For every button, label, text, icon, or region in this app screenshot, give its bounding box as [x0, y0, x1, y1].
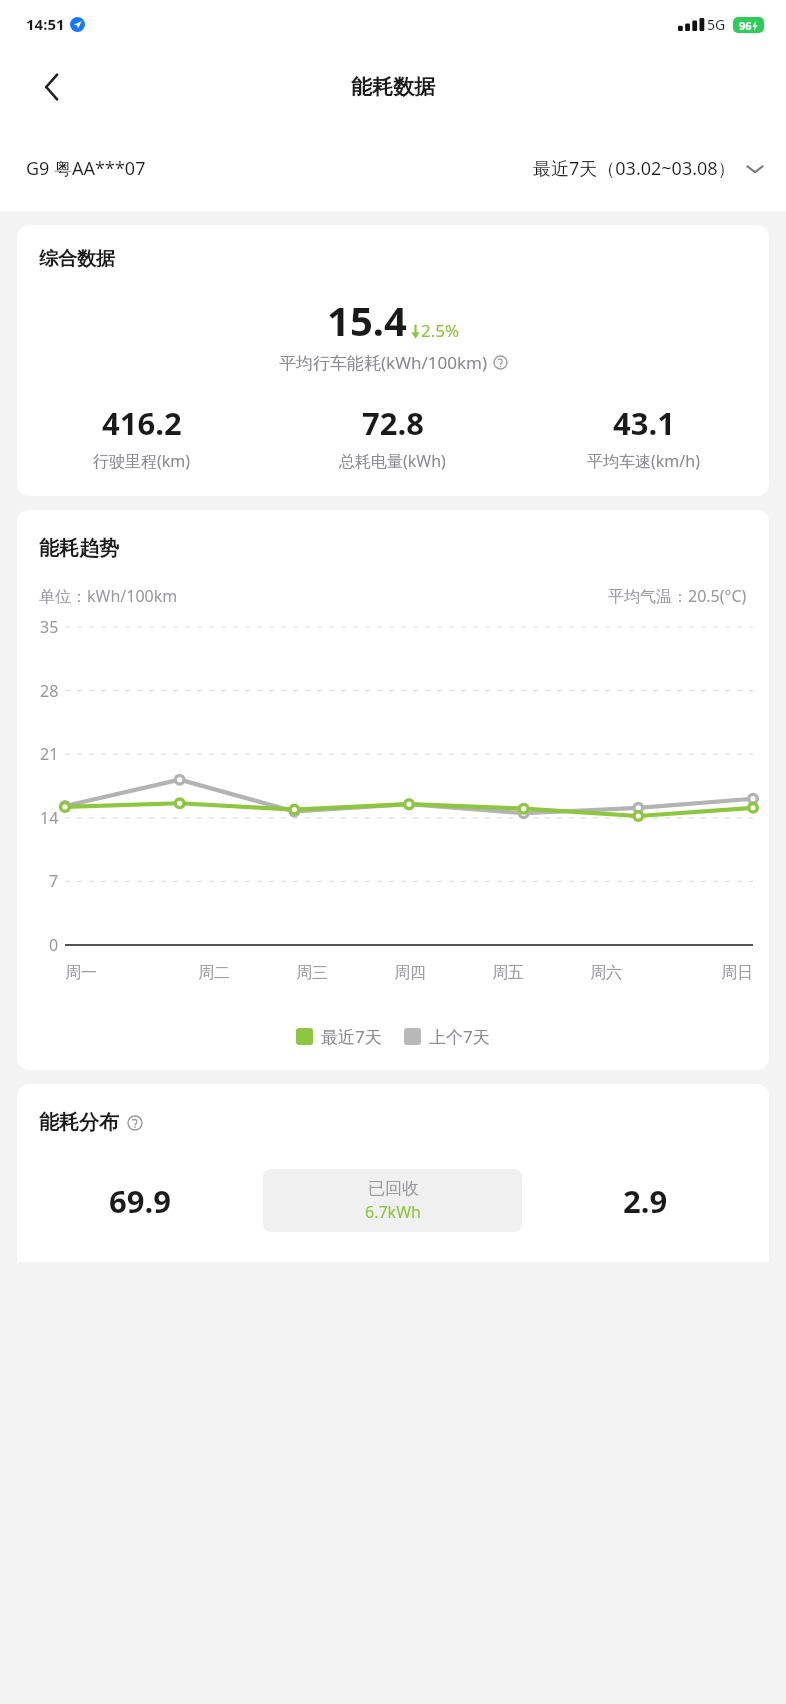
staticText: 416.2 [102, 402, 182, 444]
staticText: 69.9 [109, 1180, 171, 1222]
staticText: 15.4 [327, 293, 407, 347]
staticText: 平均行车能耗(kWh/100km) [279, 351, 488, 374]
staticText: 0 [49, 934, 59, 956]
staticText: 7 [49, 870, 59, 892]
staticText: 28 [40, 680, 59, 702]
staticText: 能耗数据 [351, 74, 435, 100]
button[interactable]: Back [30, 65, 74, 109]
staticText: 6.7kWh [365, 1201, 421, 1223]
staticText: 72.8 [362, 402, 424, 444]
button[interactable]: 最近7天（03.02~03.08） [533, 156, 764, 181]
staticText: 综合数据 [39, 247, 115, 271]
staticText: 单位：kWh/100km [39, 585, 178, 607]
staticText: 行驶里程(km) [93, 450, 191, 472]
staticText: 平均车速(km/h) [587, 450, 700, 472]
staticText: G9 粤AA***07 [26, 156, 146, 181]
staticText: 平均气温：20.5(°C) [608, 585, 747, 607]
staticText: 14:51 [26, 14, 65, 34]
staticText: 周一 [65, 963, 97, 983]
staticText: 周五 [492, 963, 524, 983]
staticText: 周三 [296, 963, 328, 983]
staticText: 能耗趋势 [39, 536, 119, 561]
staticText: 最近7天（03.02~03.08） [533, 156, 736, 181]
staticText: 43.1 [613, 402, 675, 444]
staticText: 周二 [198, 963, 230, 983]
staticText: 能耗分布 [39, 1110, 119, 1135]
staticText: 21 [40, 743, 59, 765]
staticText: 2.9 [623, 1180, 668, 1222]
staticText: 总耗电量(kWh) [339, 450, 446, 472]
staticText: 35 [40, 616, 59, 638]
staticText: 周日 [721, 963, 753, 983]
staticText: 2.5% [421, 319, 460, 342]
staticText: 14 [40, 807, 59, 829]
staticText: 最近7天 [321, 1025, 382, 1048]
staticText: 已回收 [368, 1178, 419, 1199]
staticText: 上个7天 [429, 1025, 490, 1048]
staticText: 96 [739, 18, 752, 33]
staticText: 5G [707, 15, 726, 34]
staticText: 周四 [394, 963, 426, 983]
staticText: 周六 [590, 963, 622, 983]
